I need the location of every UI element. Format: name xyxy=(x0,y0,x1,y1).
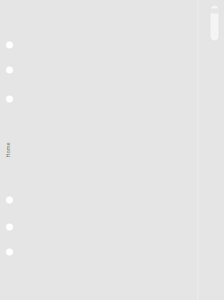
button[interactable]: Row 3 xyxy=(6,95,13,102)
button[interactable]: Row 4 xyxy=(6,196,13,203)
button[interactable]: Row 6 xyxy=(6,248,13,255)
button[interactable]: Row 1 xyxy=(6,41,13,48)
staticText: Home xyxy=(0,146,15,154)
button[interactable]: Row 2 xyxy=(6,66,13,73)
button[interactable]: Row 5 xyxy=(6,223,13,230)
